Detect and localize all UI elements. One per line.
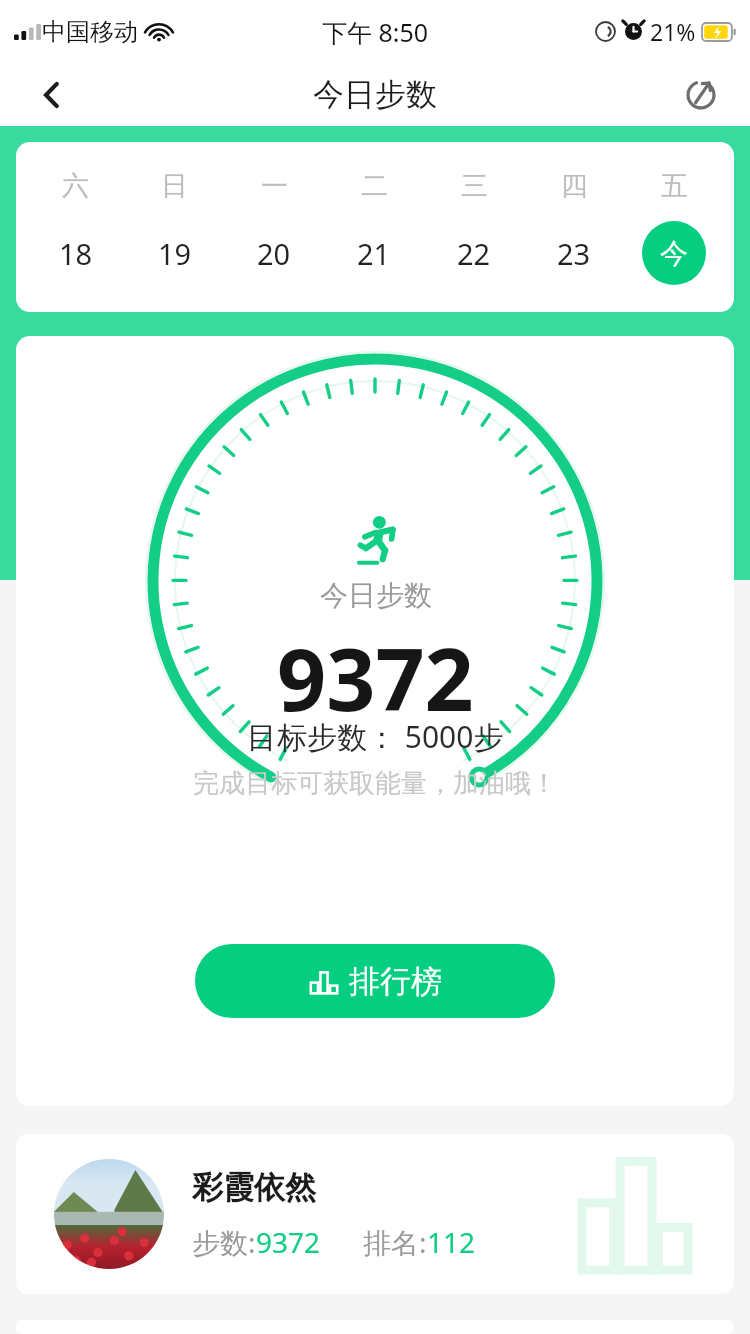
staticText: 三 <box>461 169 488 203</box>
button[interactable]: 六 <box>26 142 125 312</box>
button[interactable]: 五 <box>624 142 724 312</box>
button[interactable]: 日 <box>125 142 224 312</box>
staticText: 23 <box>557 234 591 273</box>
staticText: 112 <box>427 1223 476 1261</box>
staticText: 21% <box>650 16 696 47</box>
staticText: 完成目标可获取能量，加油哦！ <box>193 767 557 800</box>
staticText: 18 <box>59 234 93 273</box>
staticText: 二 <box>361 169 388 203</box>
button[interactable]: Back <box>26 69 78 121</box>
staticText: 目标步数： 5000步 <box>247 716 504 757</box>
button[interactable]: 排行榜 <box>195 944 555 1018</box>
staticText: 今 <box>660 236 688 271</box>
staticText: 今日步数 <box>313 75 437 114</box>
staticText: 9372 <box>277 619 474 736</box>
staticText: 一 <box>261 169 288 203</box>
staticText: 20 <box>257 234 291 273</box>
button[interactable]: 一 <box>224 142 324 312</box>
staticText: 步数: <box>192 1223 256 1261</box>
staticText: 19 <box>158 234 192 273</box>
staticText: 排名: <box>363 1223 427 1261</box>
staticText: 六 <box>62 169 89 203</box>
staticText: 五 <box>661 169 688 203</box>
button[interactable]: 二 <box>324 142 424 312</box>
button[interactable]: 四 <box>524 142 624 312</box>
staticText: 四 <box>561 169 588 203</box>
button[interactable]: 彩霞依然 <box>16 1134 734 1294</box>
staticText: 彩霞依然 <box>192 1168 316 1207</box>
staticText: 今日步数 <box>320 578 432 613</box>
staticText: 22 <box>457 234 491 273</box>
staticText: 21 <box>357 234 391 273</box>
staticText: 9372 <box>256 1223 321 1261</box>
staticText: 中国移动 <box>42 17 138 47</box>
staticText: 排行榜 <box>349 962 442 1001</box>
staticText: 日 <box>161 169 188 203</box>
staticText: 下午 8:50 <box>322 15 429 49</box>
button[interactable]: Refresh <box>674 68 728 122</box>
button[interactable]: 三 <box>424 142 524 312</box>
